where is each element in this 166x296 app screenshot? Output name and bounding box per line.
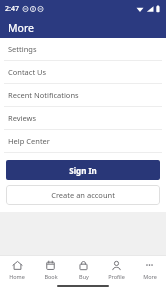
- button[interactable]: Book: [34, 256, 67, 284]
- staticText: Help Center: [8, 136, 50, 146]
- staticText: Profile: [108, 273, 125, 280]
- staticText: Recent Notifications: [8, 90, 79, 100]
- staticText: Reviews: [8, 113, 37, 123]
- button[interactable]: Recent Notifications: [0, 84, 166, 106]
- button[interactable]: More: [133, 256, 166, 284]
- staticText: Book: [44, 273, 58, 280]
- staticText: Settings: [8, 44, 37, 54]
- other: More: [144, 260, 155, 271]
- button[interactable]: Profile: [100, 256, 133, 284]
- button[interactable]: Buy: [67, 256, 100, 284]
- other: Book: [45, 260, 56, 271]
- staticText: Create an account: [51, 190, 115, 200]
- staticText: Sign In: [69, 165, 97, 176]
- staticText: More: [8, 21, 34, 35]
- button[interactable]: Reviews: [0, 107, 166, 129]
- other: Home: [12, 260, 23, 271]
- staticText: Buy: [79, 273, 89, 280]
- button[interactable]: Help Center: [0, 130, 166, 152]
- staticText: Contact Us: [8, 67, 47, 77]
- button[interactable]: Create an account: [6, 185, 160, 205]
- other: Profile: [111, 260, 122, 271]
- other: Buy: [78, 260, 89, 271]
- button[interactable]: Home: [0, 256, 34, 284]
- button[interactable]: Settings: [0, 38, 166, 60]
- button[interactable]: Contact Us: [0, 61, 166, 83]
- staticText: 2:47: [5, 4, 19, 14]
- staticText: More: [143, 273, 157, 280]
- staticText: Home: [9, 273, 25, 280]
- button[interactable]: Sign In: [6, 160, 160, 180]
